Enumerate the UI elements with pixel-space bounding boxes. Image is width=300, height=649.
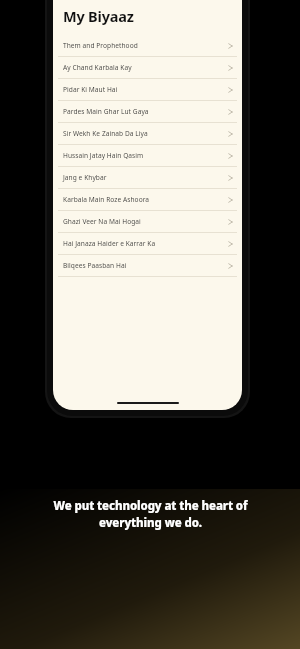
staticText: Bilqees Paasban Hai (63, 261, 228, 270)
other: Open (228, 218, 233, 226)
staticText: Ghazi Veer Na Mai Hogai (63, 217, 228, 226)
other: Open (228, 86, 233, 94)
staticText: Sir Wekh Ke Zainab Da Liya (63, 129, 228, 138)
staticText: Hussain Jatay Hain Qasim (63, 151, 228, 160)
other: Open (228, 152, 233, 160)
button[interactable]: Ghazi Veer Na Mai Hogai (53, 211, 242, 232)
staticText: We put technology at the heart of (53, 498, 248, 514)
staticText: Ay Chand Karbala Kay (63, 63, 228, 72)
button[interactable]: Sir Wekh Ke Zainab Da Liya (53, 123, 242, 144)
other: Open (228, 130, 233, 138)
button[interactable]: Pidar Ki Maut Hai (53, 79, 242, 100)
other: Open (228, 174, 233, 182)
other: Open (228, 42, 233, 50)
button[interactable]: Hai Janaza Haider e Karrar Ka (53, 233, 242, 254)
other: Open (228, 240, 233, 248)
other: Open (228, 64, 233, 72)
button[interactable]: Ay Chand Karbala Kay (53, 57, 242, 78)
staticText: Jang e Khybar (63, 173, 228, 182)
other: Open (228, 196, 233, 204)
staticText: Karbala Main Roze Ashoora (63, 195, 228, 204)
staticText: Pidar Ki Maut Hai (63, 85, 228, 94)
button[interactable]: Bilqees Paasban Hai (53, 255, 242, 276)
staticText: Pardes Main Ghar Lut Gaya (63, 107, 228, 116)
staticText: My Biyaaz (63, 6, 134, 26)
button[interactable]: Hussain Jatay Hain Qasim (53, 145, 242, 166)
staticText: everything we do. (99, 515, 202, 531)
button[interactable]: Karbala Main Roze Ashoora (53, 189, 242, 210)
button[interactable]: Them and Prophethood (53, 35, 242, 56)
staticText: Hai Janaza Haider e Karrar Ka (63, 239, 228, 248)
staticText: Them and Prophethood (63, 41, 228, 50)
other: Open (228, 262, 233, 270)
other: Open (228, 108, 233, 116)
button[interactable]: Jang e Khybar (53, 167, 242, 188)
button[interactable]: Pardes Main Ghar Lut Gaya (53, 101, 242, 122)
